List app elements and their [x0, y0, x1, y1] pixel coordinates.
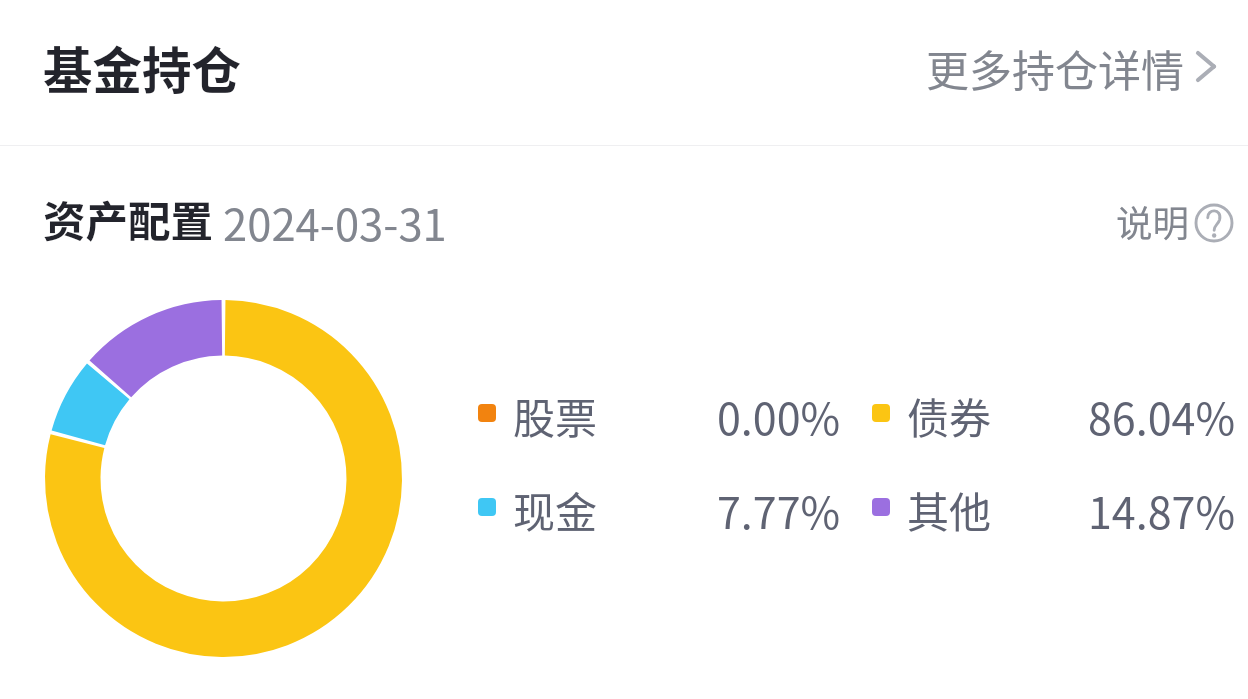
staticText: 股票 — [513, 385, 598, 446]
staticText: 0.00% — [717, 385, 841, 447]
staticText: 2024-03-31 — [223, 190, 447, 253]
button[interactable]: 股票 — [466, 374, 853, 450]
staticText: 债券 — [907, 385, 992, 446]
staticText: 现金 — [513, 479, 598, 540]
button[interactable]: 说明 — [1108, 189, 1239, 254]
staticText: 14.87% — [1088, 479, 1236, 541]
staticText: 基金持仓 — [43, 32, 241, 104]
button[interactable]: 现金 — [466, 468, 853, 544]
staticText: 86.04% — [1088, 385, 1236, 447]
staticText: 说明 — [1116, 195, 1189, 248]
other: 资产配置占比环形图 — [45, 300, 402, 657]
button[interactable]: 更多持仓详情 — [918, 28, 1224, 118]
staticText: 7.77% — [717, 479, 841, 541]
staticText: 更多持仓详情 — [926, 37, 1184, 99]
staticText: 资产配置 — [43, 188, 214, 250]
button[interactable]: 其他 — [860, 468, 1248, 544]
button[interactable]: 债券 — [860, 374, 1248, 450]
staticText: 其他 — [907, 479, 992, 540]
